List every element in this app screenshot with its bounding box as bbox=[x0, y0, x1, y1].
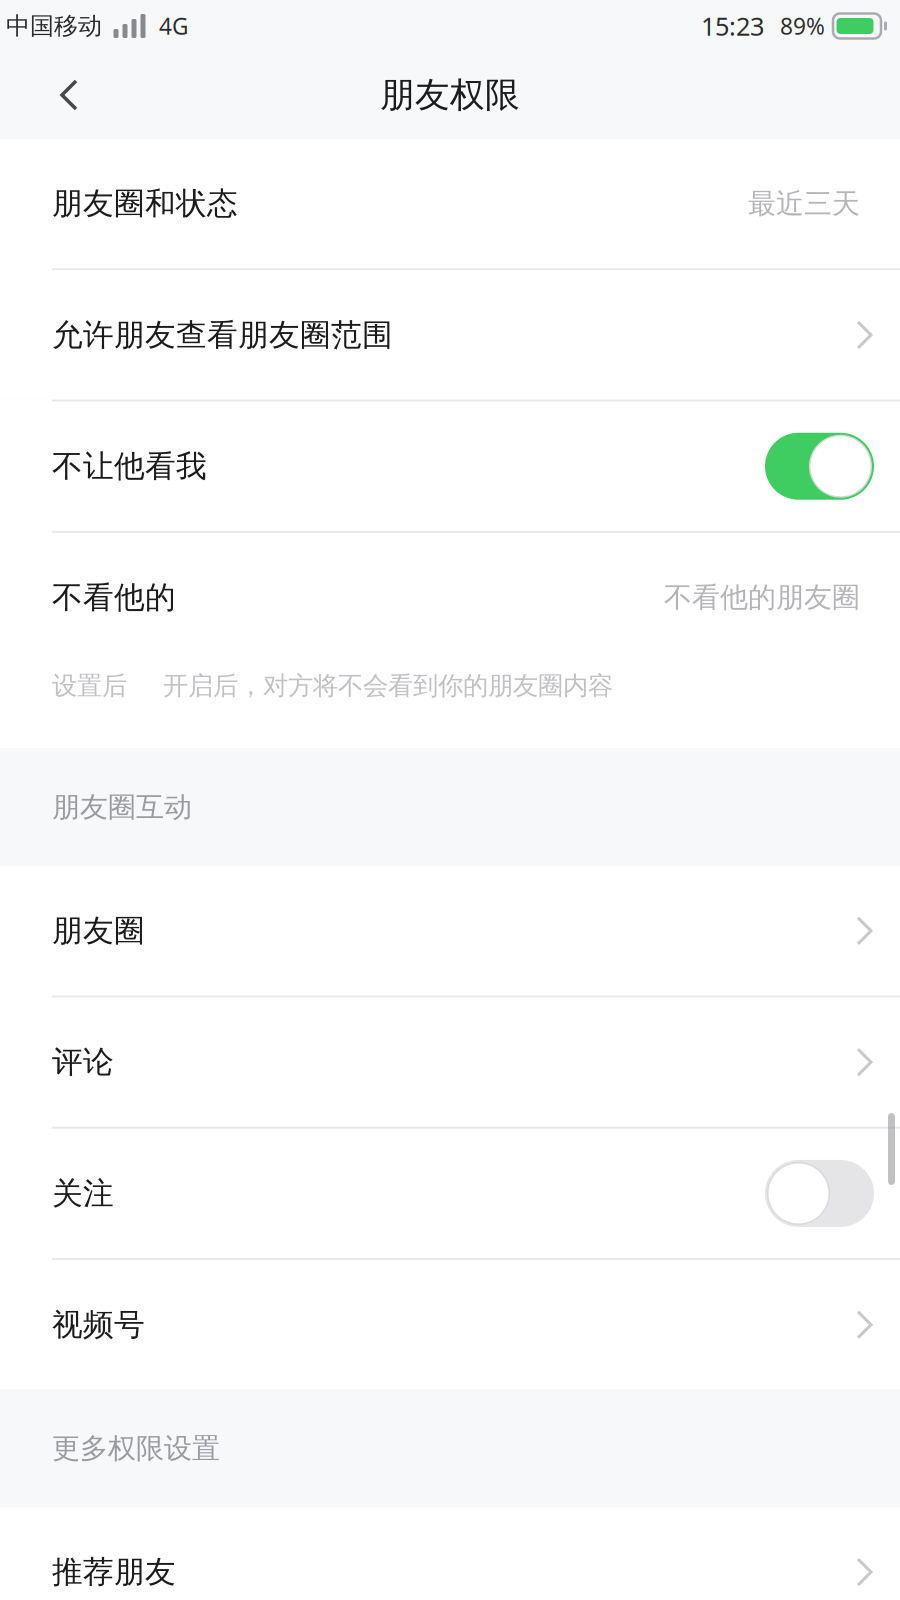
staticText: 朋友权限 bbox=[380, 74, 520, 116]
button[interactable]: 返回 bbox=[30, 56, 106, 134]
staticText: 关注 bbox=[52, 1175, 114, 1212]
button[interactable]: 允许朋友查看朋友圈范围 bbox=[0, 270, 900, 400]
staticText: 允许朋友查看朋友圈范围 bbox=[52, 316, 393, 354]
staticText: 4G bbox=[159, 11, 189, 41]
staticText: 最近三天 bbox=[748, 186, 860, 221]
button[interactable]: 视频号 bbox=[0, 1260, 900, 1389]
button[interactable]: 不让他看我 bbox=[0, 402, 900, 531]
staticText: 不让他看我 bbox=[52, 447, 207, 485]
staticText: 朋友圈 bbox=[52, 912, 145, 950]
staticText: 不看他的 bbox=[52, 579, 176, 616]
button[interactable]: 朋友圈和状态 bbox=[0, 139, 900, 268]
button[interactable]: 朋友圈 bbox=[0, 866, 900, 995]
staticText: 15:23 bbox=[701, 9, 764, 43]
staticText: 更多权限设置 bbox=[52, 1431, 220, 1466]
staticText: 设置后 bbox=[52, 670, 127, 701]
staticText: 朋友圈和状态 bbox=[52, 185, 238, 222]
staticText: 推荐朋友 bbox=[52, 1553, 176, 1591]
staticText: 不看他的朋友圈 bbox=[664, 580, 860, 615]
staticText: 89% bbox=[780, 11, 825, 41]
button[interactable]: 推荐朋友 bbox=[0, 1507, 900, 1600]
button[interactable]: 评论 bbox=[0, 997, 900, 1127]
staticText: 评论 bbox=[52, 1043, 114, 1081]
staticText: 视频号 bbox=[52, 1306, 145, 1344]
staticText: 开启后，对方将不会看到你的朋友圈内容 bbox=[163, 670, 613, 701]
button[interactable]: 不看他的 bbox=[0, 533, 900, 662]
staticText: 朋友圈互动 bbox=[52, 790, 192, 824]
staticText: 中国移动 bbox=[6, 11, 102, 41]
button[interactable]: 关注 bbox=[0, 1129, 900, 1258]
